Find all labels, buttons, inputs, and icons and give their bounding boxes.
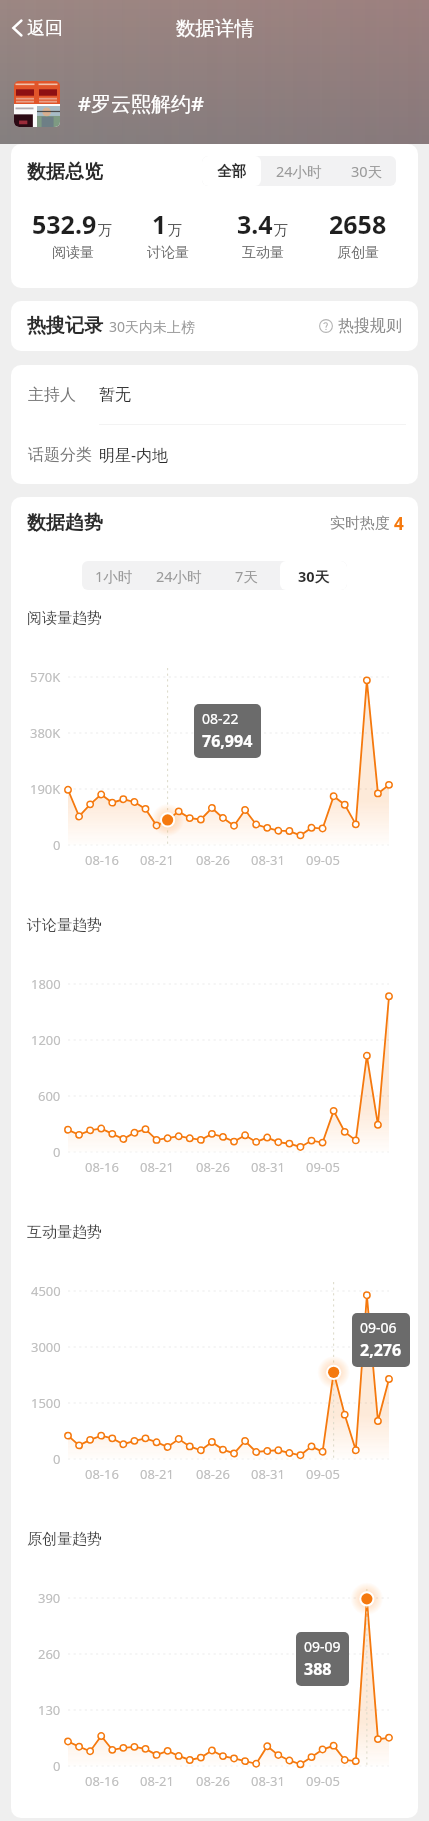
staticText: 190K — [30, 780, 61, 798]
staticText: 08-26 — [196, 1465, 230, 1483]
staticText: 4500 — [31, 1282, 61, 1300]
staticText: 76,994 — [202, 730, 253, 752]
staticText: 返回 — [27, 17, 63, 40]
staticText: 讨论量趋势 — [27, 916, 102, 935]
staticText: 0 — [53, 1143, 61, 1161]
staticText: 30天 — [351, 161, 383, 181]
staticText: 130 — [38, 1701, 61, 1719]
staticText: 09-05 — [306, 1465, 340, 1483]
staticText: 08-21 — [140, 1158, 174, 1176]
staticText: 260 — [38, 1645, 61, 1663]
staticText: 阅读量趋势 — [27, 609, 102, 628]
staticText: 08-16 — [85, 1465, 119, 1483]
staticText: 30天内未上榜 — [109, 317, 196, 336]
button[interactable]: 1小时 — [82, 561, 145, 590]
button[interactable]: 7天 — [212, 561, 280, 590]
staticText: 1800 — [31, 975, 61, 993]
staticText: 09-06 — [360, 1318, 397, 1337]
staticText: 0 — [53, 1450, 61, 1468]
staticText: 万 — [98, 221, 113, 239]
staticText: 原创量 — [337, 244, 379, 262]
staticText: 3.4 — [237, 207, 273, 241]
staticText: 2658 — [329, 207, 387, 241]
button[interactable]: 话题封面 — [14, 81, 60, 127]
button[interactable]: 24小时 — [145, 561, 212, 590]
button[interactable]: 热搜规则 — [319, 316, 402, 336]
staticText: 原创量趋势 — [27, 1530, 102, 1549]
staticText: 7天 — [235, 566, 258, 586]
button[interactable]: 话题分类 — [11, 425, 418, 484]
staticText: 数据总览 — [27, 160, 103, 184]
staticText: 08-26 — [196, 851, 230, 869]
staticText: 09-09 — [304, 1637, 341, 1656]
staticText: 08-22 — [202, 709, 239, 728]
staticText: 30天 — [298, 566, 330, 586]
staticText: 08-16 — [85, 1158, 119, 1176]
staticText: 数据趋势 — [27, 511, 103, 535]
staticText: 08-21 — [140, 1465, 174, 1483]
staticText: 4 — [394, 512, 404, 535]
staticText: 08-31 — [251, 1158, 285, 1176]
staticText: 全部 — [217, 162, 246, 180]
staticText: 0 — [53, 1757, 61, 1775]
staticText: 3000 — [31, 1338, 61, 1356]
staticText: #罗云熙解约# — [78, 90, 204, 117]
staticText: 互动量 — [242, 244, 284, 262]
staticText: 600 — [38, 1087, 61, 1105]
staticText: 08-21 — [140, 1772, 174, 1790]
staticText: 570K — [30, 668, 61, 686]
staticText: 390 — [38, 1589, 61, 1607]
staticText: 热搜规则 — [338, 316, 402, 336]
staticText: 08-31 — [251, 851, 285, 869]
staticText: 互动量趋势 — [27, 1223, 102, 1242]
button[interactable]: 24小时 — [261, 156, 337, 186]
staticText: 1小时 — [95, 566, 133, 586]
staticText: 08-21 — [140, 851, 174, 869]
staticText: 08-31 — [251, 1465, 285, 1483]
button[interactable]: 30天 — [337, 156, 396, 186]
staticText: 1500 — [31, 1394, 61, 1412]
staticText: 数据详情 — [176, 16, 254, 41]
staticText: 讨论量 — [147, 244, 189, 262]
staticText: 380K — [30, 724, 61, 742]
staticText: 09-05 — [306, 1772, 340, 1790]
staticText: 24小时 — [276, 161, 322, 181]
staticText: 532.9 — [32, 207, 97, 241]
staticText: 08-16 — [85, 1772, 119, 1790]
staticText: 0 — [53, 836, 61, 854]
staticText: 08-16 — [85, 851, 119, 869]
staticText: 实时热度 — [330, 514, 390, 533]
staticText: 09-05 — [306, 1158, 340, 1176]
staticText: 1 — [152, 207, 167, 241]
staticText: 24小时 — [156, 566, 202, 586]
staticText: 万 — [168, 221, 183, 239]
staticText: 明星-内地 — [99, 444, 169, 466]
button[interactable]: 返回 — [12, 0, 63, 56]
staticText: 08-26 — [196, 1158, 230, 1176]
button[interactable]: 30天 — [280, 561, 347, 590]
staticText: 2,276 — [360, 1339, 402, 1361]
staticText: 09-05 — [306, 851, 340, 869]
button[interactable]: 主持人 — [11, 365, 418, 425]
staticText: 08-26 — [196, 1772, 230, 1790]
staticText: 暂无 — [99, 385, 131, 405]
staticText: 万 — [274, 221, 289, 239]
staticText: 话题分类 — [28, 445, 92, 465]
staticText: 热搜记录 — [27, 314, 103, 338]
staticText: 08-31 — [251, 1772, 285, 1790]
staticText: 阅读量 — [52, 244, 94, 262]
button[interactable]: 全部 — [202, 156, 261, 186]
staticText: 主持人 — [28, 385, 76, 405]
staticText: 1200 — [31, 1031, 61, 1049]
staticText: 388 — [304, 1658, 332, 1680]
